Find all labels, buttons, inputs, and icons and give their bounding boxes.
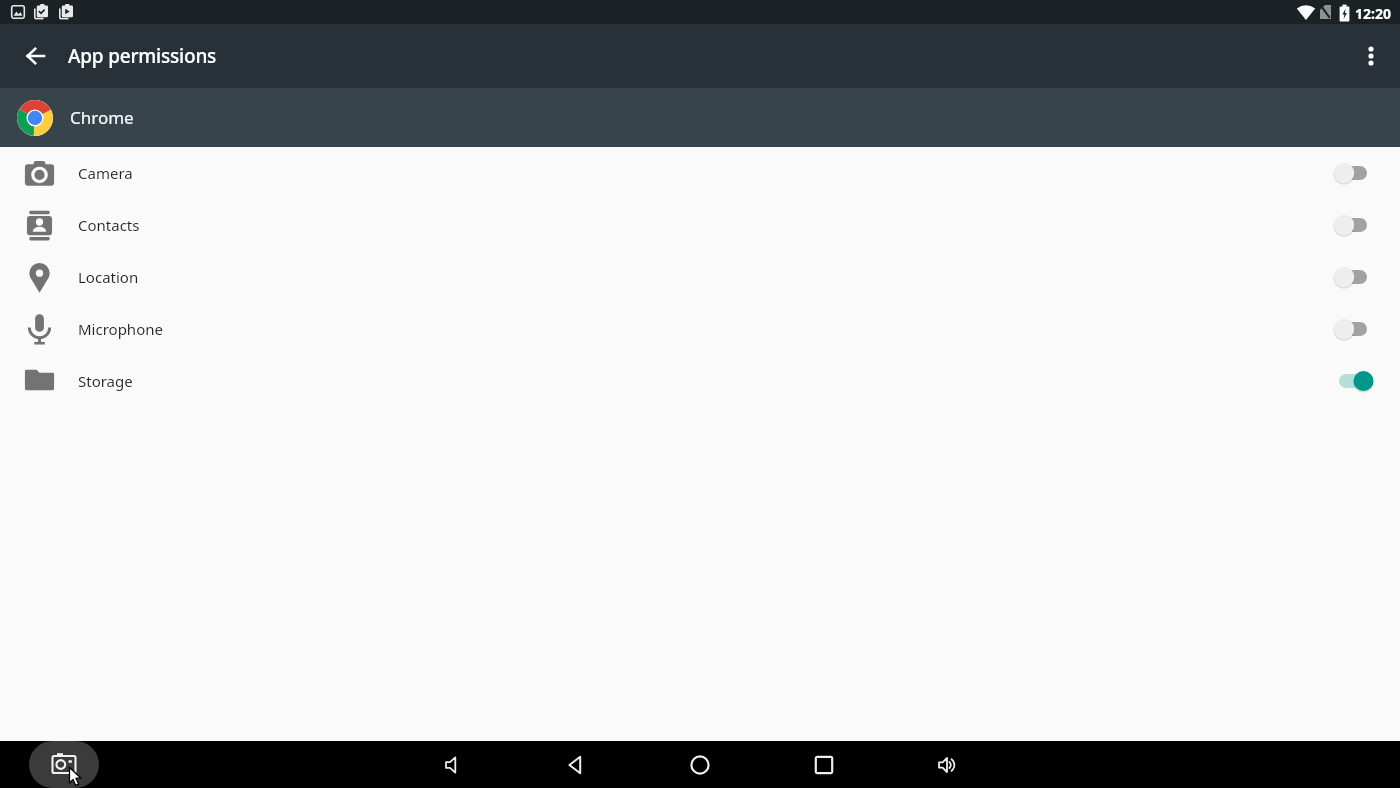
button[interactable] — [1328, 265, 1376, 289]
button[interactable] — [1328, 213, 1376, 237]
button[interactable]: Camera — [0, 147, 1400, 199]
button[interactable]: Microphone — [0, 303, 1400, 355]
staticText: Microphone — [78, 319, 163, 339]
button[interactable]: Location — [0, 251, 1400, 303]
button[interactable] — [1349, 34, 1393, 78]
button[interactable] — [13, 34, 57, 78]
button[interactable]: Storage — [0, 355, 1400, 407]
button[interactable]: Chrome — [0, 88, 1400, 147]
button[interactable] — [429, 742, 475, 788]
staticText: Storage — [78, 371, 133, 391]
staticText: Location — [78, 267, 139, 287]
button[interactable] — [677, 742, 723, 788]
button[interactable] — [40, 741, 87, 788]
staticText: App permissions — [68, 43, 217, 69]
button[interactable] — [925, 742, 971, 788]
button[interactable]: Contacts — [0, 199, 1400, 251]
button[interactable] — [801, 742, 847, 788]
button[interactable] — [1328, 161, 1376, 185]
button[interactable] — [553, 742, 599, 788]
button[interactable] — [1328, 317, 1376, 341]
staticText: Contacts — [78, 215, 140, 235]
button[interactable] — [1328, 369, 1376, 393]
staticText: Camera — [78, 163, 133, 183]
staticText: Chrome — [70, 106, 134, 129]
staticText: 12:20 — [1355, 4, 1391, 23]
